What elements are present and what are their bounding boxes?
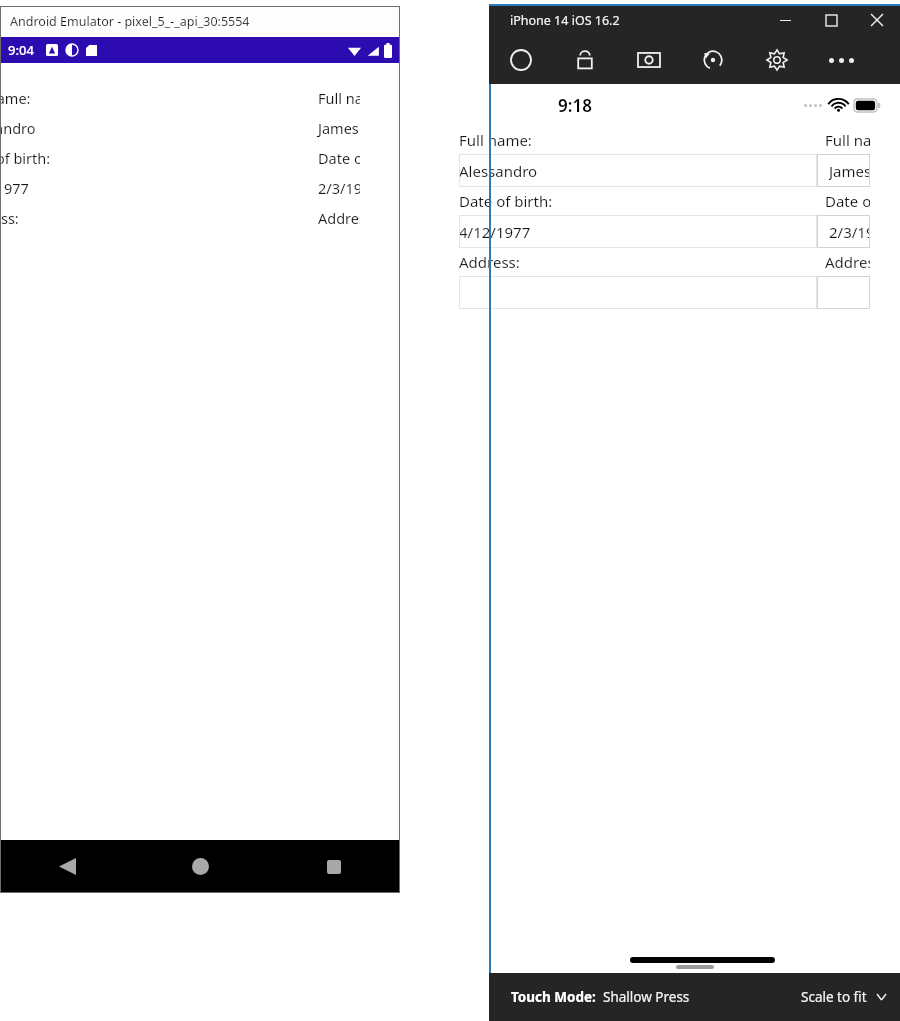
button[interactable]: Minimize: [762, 4, 808, 36]
button[interactable]: Close: [854, 4, 900, 36]
staticText: Address:: [825, 252, 870, 272]
button[interactable]: Lock: [553, 36, 617, 84]
button[interactable]: 4/12/1977: [459, 215, 817, 248]
staticText: James: [318, 118, 359, 138]
button[interactable]: Screenshot: [617, 36, 681, 84]
staticText: Date of birth:: [459, 191, 553, 211]
button[interactable]: Address:: [817, 248, 870, 276]
button[interactable]: Full name:: [0, 83, 360, 113]
button[interactable]: [459, 276, 817, 309]
button[interactable]: 4/12/1977: [0, 173, 360, 203]
staticText: 4/12/1977: [0, 178, 29, 198]
staticText: Scale to fit: [801, 988, 867, 1006]
staticText: Date of birth:: [825, 191, 870, 211]
button[interactable]: Home: [134, 840, 267, 893]
staticText: Shallow Press: [603, 988, 690, 1006]
staticText: Address:: [318, 208, 360, 228]
button[interactable]: Full name:: [817, 126, 870, 154]
button[interactable]: Rotate: [681, 36, 745, 84]
button[interactable]: Alessandro: [459, 154, 817, 187]
staticText: Date of birth:: [0, 148, 51, 168]
staticText: James: [829, 161, 870, 181]
button[interactable]: Back: [0, 840, 134, 893]
button[interactable]: James: [817, 154, 870, 187]
button[interactable]: Scale to fit: [801, 988, 886, 1006]
button[interactable]: [817, 276, 870, 309]
staticText: Full name:: [825, 130, 870, 150]
button[interactable]: More options: [809, 36, 873, 84]
button[interactable]: Address:: [0, 203, 360, 233]
button[interactable]: Address:: [459, 248, 817, 276]
staticText: 4/12/1977: [459, 222, 531, 242]
staticText: Full name:: [459, 130, 532, 150]
button[interactable]: Alessandro: [0, 113, 360, 143]
staticText: 9:04: [8, 41, 34, 59]
button[interactable]: Date of birth:: [459, 187, 817, 215]
staticText: iPhone 14 iOS 16.2: [510, 12, 620, 29]
staticText: Touch Mode:: [511, 988, 596, 1006]
staticText: Alessandro: [0, 118, 36, 138]
staticText: 9:18: [558, 94, 592, 117]
staticText: Full name:: [0, 88, 31, 108]
staticText: Android Emulator - pixel_5_-_api_30:5554: [10, 13, 250, 30]
button[interactable]: Date of birth:: [817, 187, 870, 215]
button[interactable]: Maximize: [808, 4, 854, 36]
button[interactable]: Recent apps: [267, 840, 400, 893]
staticText: Address:: [459, 252, 520, 272]
button[interactable]: Date of birth:: [0, 143, 360, 173]
button[interactable]: 2/3/1985: [817, 215, 870, 248]
staticText: 2/3/1985: [829, 222, 870, 242]
button[interactable]: Full name:: [459, 126, 817, 154]
staticText: Alessandro: [459, 161, 538, 181]
button[interactable]: Settings: [745, 36, 809, 84]
button[interactable]: Home: [489, 36, 553, 84]
staticText: Date of birth:: [318, 148, 360, 168]
staticText: Address:: [0, 208, 19, 228]
staticText: 2/3/1985: [318, 178, 360, 198]
staticText: Full name:: [318, 88, 360, 108]
